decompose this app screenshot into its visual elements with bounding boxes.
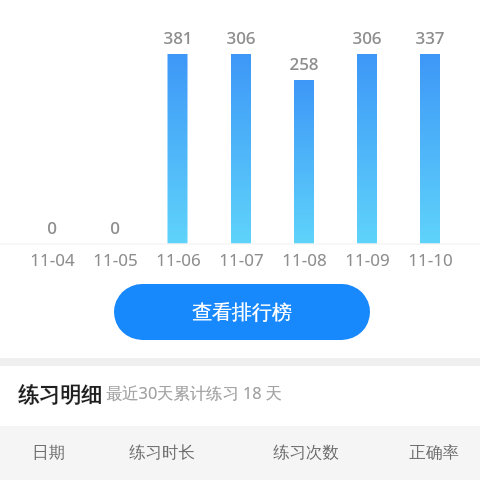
staticText: 11-05: [93, 248, 138, 271]
staticText: 306: [352, 26, 382, 49]
staticText: 11-07: [219, 248, 264, 271]
staticText: 0: [110, 216, 120, 239]
staticText: 0: [47, 216, 57, 239]
staticText: 正确率: [409, 442, 459, 463]
staticText: 11-04: [30, 248, 75, 271]
staticText: 查看排行榜: [192, 300, 292, 325]
staticText: 练习次数: [273, 442, 339, 463]
staticText: 381: [163, 26, 193, 49]
staticText: 练习时长: [129, 442, 195, 463]
staticText: 练习明细: [18, 382, 102, 408]
staticText: 11-10: [408, 248, 453, 271]
button[interactable]: 查看排行榜: [114, 284, 370, 340]
staticText: 11-08: [282, 248, 327, 271]
staticText: 337: [415, 26, 445, 49]
other: 最近7天练习次数柱状图: [0, 0, 480, 244]
staticText: 306: [226, 26, 256, 49]
staticText: 最近30天累计练习 18 天: [106, 382, 283, 404]
staticText: 258: [289, 52, 319, 75]
staticText: 11-06: [156, 248, 201, 271]
staticText: 日期: [32, 442, 65, 463]
staticText: 11-09: [345, 248, 390, 271]
button[interactable]: 练习明细: [0, 366, 480, 426]
